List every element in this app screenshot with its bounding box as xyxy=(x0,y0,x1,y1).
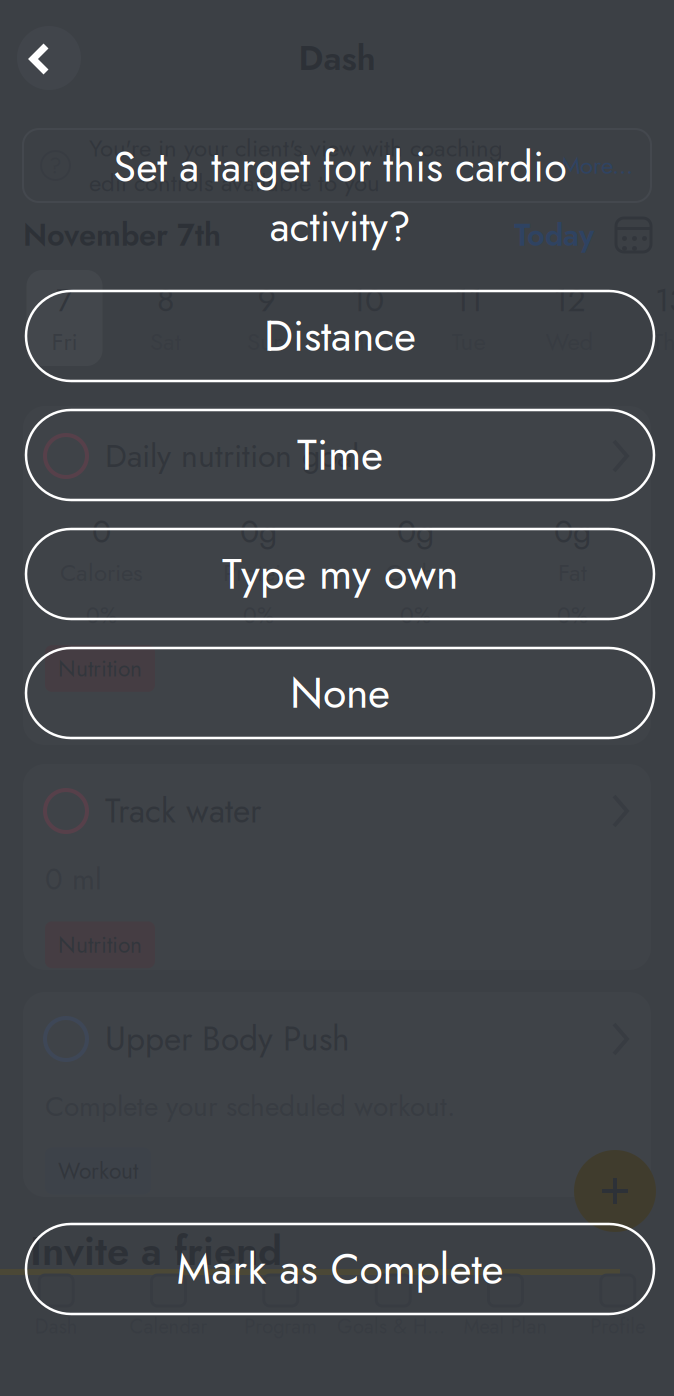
staticText: 11 xyxy=(454,277,482,323)
staticText: 8 xyxy=(157,277,174,323)
button[interactable]: 9 xyxy=(216,270,317,366)
staticText: Protein xyxy=(223,555,294,590)
button[interactable]: 8 xyxy=(115,270,216,366)
button[interactable]: Time xyxy=(26,410,654,500)
staticText: Carbs xyxy=(385,555,445,590)
button[interactable]: Goals & Hab... xyxy=(337,1275,449,1341)
staticText: 0g xyxy=(554,508,591,554)
button[interactable]: None xyxy=(26,648,654,738)
staticText: Nutrition xyxy=(58,652,142,685)
button[interactable]: Calendar xyxy=(112,1275,225,1341)
staticText: Program xyxy=(244,1312,317,1341)
staticText: 12 xyxy=(553,277,585,323)
staticText: Time xyxy=(297,424,383,486)
button[interactable]: Add xyxy=(574,1150,656,1232)
staticText: You're in your client's view with coachi… xyxy=(89,131,503,200)
staticText: Dash xyxy=(298,33,375,83)
staticText: Mon xyxy=(345,324,390,359)
staticText: Upper Body Push xyxy=(105,1015,350,1063)
staticText: 0g xyxy=(240,508,277,554)
staticText: 10 xyxy=(351,277,384,323)
staticText: None xyxy=(290,662,390,724)
staticText: Distance xyxy=(264,305,416,367)
staticText: 0% xyxy=(400,599,431,632)
staticText: Workout xyxy=(58,1154,138,1187)
button[interactable]: Program xyxy=(225,1275,337,1341)
staticText: Type my own xyxy=(222,543,458,605)
button[interactable]: Meal Plan xyxy=(449,1275,562,1341)
button[interactable]: Distance xyxy=(26,291,654,381)
button[interactable]: 13 xyxy=(620,270,674,366)
button[interactable]: 7 xyxy=(14,270,115,366)
staticText: Sun xyxy=(247,324,286,359)
button[interactable]: 12 xyxy=(519,270,620,366)
staticText: Invite a friend xyxy=(30,1222,282,1280)
staticText: 0 xyxy=(92,508,111,554)
staticText: Daily nutrition goal xyxy=(105,433,359,479)
staticText: 0g xyxy=(397,508,434,554)
staticText: 0% xyxy=(243,599,274,632)
staticText: Profile xyxy=(590,1312,645,1341)
staticText: November 7th xyxy=(23,213,221,257)
button[interactable]: Dash xyxy=(0,1275,112,1341)
button[interactable]: Profile xyxy=(562,1275,674,1341)
staticText: Calendar xyxy=(129,1312,207,1341)
staticText: More... xyxy=(561,148,633,183)
button[interactable]: Mark as Complete xyxy=(26,1224,654,1314)
staticText: Goals & Hab... xyxy=(337,1312,449,1341)
staticText: Dash xyxy=(35,1312,78,1341)
staticText: 0% xyxy=(557,599,588,632)
staticText: 9 xyxy=(257,277,275,323)
staticText: Nutrition xyxy=(58,928,142,961)
staticText: Set a target for this cardio activity? xyxy=(113,137,567,257)
staticText: 0% xyxy=(86,599,117,632)
staticText: Meal Plan xyxy=(463,1312,547,1341)
button[interactable]: 11 xyxy=(418,270,519,366)
staticText: Today xyxy=(514,213,594,257)
staticText: Thu xyxy=(652,324,674,359)
staticText: 7 xyxy=(56,277,73,323)
button[interactable]: Back xyxy=(0,0,50,76)
staticText: Mark as Complete xyxy=(176,1238,503,1300)
button[interactable]: 10 xyxy=(317,270,418,366)
button[interactable]: Type my own xyxy=(26,529,654,619)
staticText: Fri xyxy=(51,324,77,359)
staticText: Track water xyxy=(105,787,261,835)
